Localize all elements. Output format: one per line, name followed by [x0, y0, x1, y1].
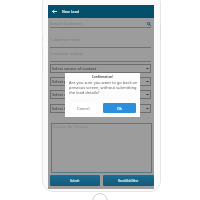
- button[interactable]: Select source of contact: [52, 64, 149, 73]
- button[interactable]: Back: [50, 7, 59, 16]
- staticText: New Lead: [62, 9, 80, 14]
- staticText: Are you sure you want to go back on prev…: [69, 80, 139, 95]
- staticText: Reason for Contact: [53, 124, 88, 129]
- button[interactable]: Search Customer: [50, 20, 151, 27]
- button[interactable]: Reason for Contact: [51, 123, 152, 173]
- staticText: Select source of contact: [52, 66, 97, 71]
- staticText: Select lead status: [52, 106, 85, 111]
- staticText: Reset/Add New: [118, 179, 139, 183]
- button[interactable]: Customer name: [50, 37, 151, 48]
- button[interactable]: Select product: [52, 77, 149, 86]
- button[interactable]: Customer mobile: [50, 51, 151, 62]
- button[interactable]: Select sub product: [52, 90, 149, 99]
- staticText: Confirmation!: [65, 75, 140, 79]
- staticText: Select sub product: [52, 92, 87, 97]
- staticText: Ok: [117, 106, 123, 111]
- button[interactable]: Home: [92, 193, 108, 200]
- button[interactable]: Ok: [103, 103, 136, 113]
- button[interactable]: Submit: [50, 175, 100, 186]
- staticText: Customer name: [50, 37, 81, 43]
- staticText: Search Customer: [50, 21, 83, 27]
- staticText: Select product: [52, 79, 79, 84]
- staticText: Customer mobile: [50, 51, 84, 57]
- staticText: Submit: [70, 179, 80, 183]
- button[interactable]: Cancel: [71, 103, 96, 113]
- other: Search: [147, 22, 151, 26]
- button[interactable]: Select lead status: [52, 104, 149, 113]
- button[interactable]: Reset/Add New: [103, 175, 154, 186]
- staticText: Cancel: [77, 106, 90, 111]
